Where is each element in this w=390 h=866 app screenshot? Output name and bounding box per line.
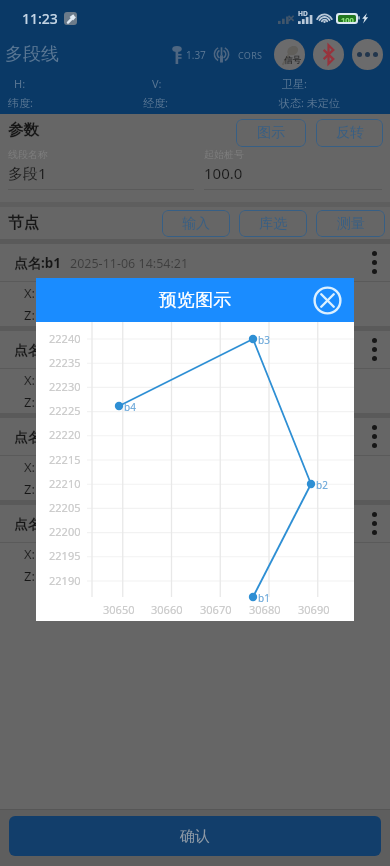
staticText: 22190 xyxy=(49,573,81,588)
button[interactable]: More options xyxy=(358,505,390,542)
staticText: 2025-11-06 14:56:11 xyxy=(70,516,189,533)
staticText: 22239.110 xyxy=(40,480,103,498)
staticText: 点名:b2 xyxy=(14,341,62,359)
staticText: 图示 xyxy=(257,124,285,142)
staticText: 30690.551 xyxy=(41,371,104,389)
staticText: 30690 xyxy=(298,602,330,617)
staticText: 经度: xyxy=(143,95,270,110)
staticText: 2025-11-06 14:55:40 xyxy=(70,429,189,446)
staticText: X: xyxy=(24,284,36,302)
staticText: 22225.007 xyxy=(40,567,103,585)
staticText: 卫星: xyxy=(282,76,307,91)
staticText: 2025-11-06 14:55:02 xyxy=(70,342,189,359)
staticText: 11:23 xyxy=(22,9,58,28)
staticText: 库选 xyxy=(259,215,287,233)
staticText: 22235 xyxy=(49,355,81,370)
button[interactable]: Bluetooth xyxy=(313,39,344,70)
staticText: 反转 xyxy=(336,124,364,142)
staticText: 30649.330 xyxy=(41,545,104,563)
staticText: 22215 xyxy=(49,452,81,467)
staticText: 确认 xyxy=(180,827,210,846)
staticText: 点名:b1 xyxy=(14,254,62,272)
button[interactable]: More options xyxy=(358,418,390,455)
staticText: b3 xyxy=(258,333,270,347)
staticText: Z: xyxy=(24,567,35,585)
staticText: 测量 xyxy=(337,215,365,233)
staticText: 22205 xyxy=(49,500,81,515)
staticText: 线段名称 xyxy=(8,148,48,161)
staticText: 输入 xyxy=(182,215,210,233)
button[interactable]: More options xyxy=(358,244,390,281)
staticText: 22240 xyxy=(49,331,81,346)
staticText: 点名:b4 xyxy=(14,515,62,533)
staticText: 100.0 xyxy=(204,163,243,183)
staticText: 参数 xyxy=(8,120,39,140)
button[interactable]: Close xyxy=(312,285,343,316)
staticText: 多段线 xyxy=(5,43,59,66)
staticText: X: xyxy=(24,371,36,389)
staticText: 节点 xyxy=(8,213,39,233)
staticText: 2025-11-06 14:54:21 xyxy=(70,255,189,272)
staticText: X: xyxy=(24,458,36,476)
staticText: 30660 xyxy=(151,602,183,617)
staticText: b4 xyxy=(124,400,136,414)
button[interactable]: 点名:b4 xyxy=(0,505,390,542)
button[interactable]: More options xyxy=(352,39,383,70)
staticText: 多段1 xyxy=(8,163,47,183)
staticText: 30670 xyxy=(200,602,232,617)
staticText: V: xyxy=(152,76,270,91)
staticText: Z: xyxy=(24,393,35,411)
staticText: 22200 xyxy=(49,524,81,539)
staticText: 预览图示 xyxy=(159,289,231,312)
button[interactable]: 图示 xyxy=(236,119,306,147)
button[interactable]: 点名:b3 xyxy=(0,418,390,455)
staticText: HD xyxy=(298,9,308,18)
staticText: Z: xyxy=(24,306,35,324)
staticText: 点名:b3 xyxy=(14,428,62,446)
staticText: 信号 xyxy=(284,55,301,66)
staticText: Z: xyxy=(24,480,35,498)
button[interactable]: 库选 xyxy=(239,210,307,237)
button[interactable]: 确认 xyxy=(9,816,381,856)
button[interactable]: 测量 xyxy=(316,210,385,237)
staticText: 22230 xyxy=(49,379,81,394)
button[interactable]: Satellite signal xyxy=(274,39,305,70)
staticText: H: xyxy=(14,76,140,91)
staticText: b1 xyxy=(258,591,270,605)
staticText: 30650 xyxy=(103,602,135,617)
staticText: 起始桩号 xyxy=(204,148,244,161)
staticText: 1.37 xyxy=(186,48,206,62)
button[interactable]: 点名:b2 xyxy=(0,331,390,368)
staticText: 22188.456 xyxy=(40,306,103,324)
staticText: 纬度: xyxy=(8,95,140,110)
staticText: b2 xyxy=(316,478,328,492)
staticText: 100 xyxy=(341,15,354,22)
staticText: 22209.884 xyxy=(40,393,103,411)
button[interactable]: 点名:b1 xyxy=(0,244,390,281)
staticText: 22195 xyxy=(49,548,81,563)
staticText: 30680 xyxy=(249,602,281,617)
button[interactable]: 输入 xyxy=(162,210,230,237)
staticText: 30677.902 xyxy=(41,458,104,476)
button[interactable]: 反转 xyxy=(316,119,383,147)
button[interactable]: More options xyxy=(358,331,390,368)
staticText: 状态: 未定位 xyxy=(279,95,340,110)
staticText: X: xyxy=(24,545,36,563)
staticText: 22220 xyxy=(49,427,81,442)
staticText: 22225 xyxy=(49,403,81,418)
staticText: CORS xyxy=(238,49,263,61)
staticText: 22210 xyxy=(49,476,81,491)
